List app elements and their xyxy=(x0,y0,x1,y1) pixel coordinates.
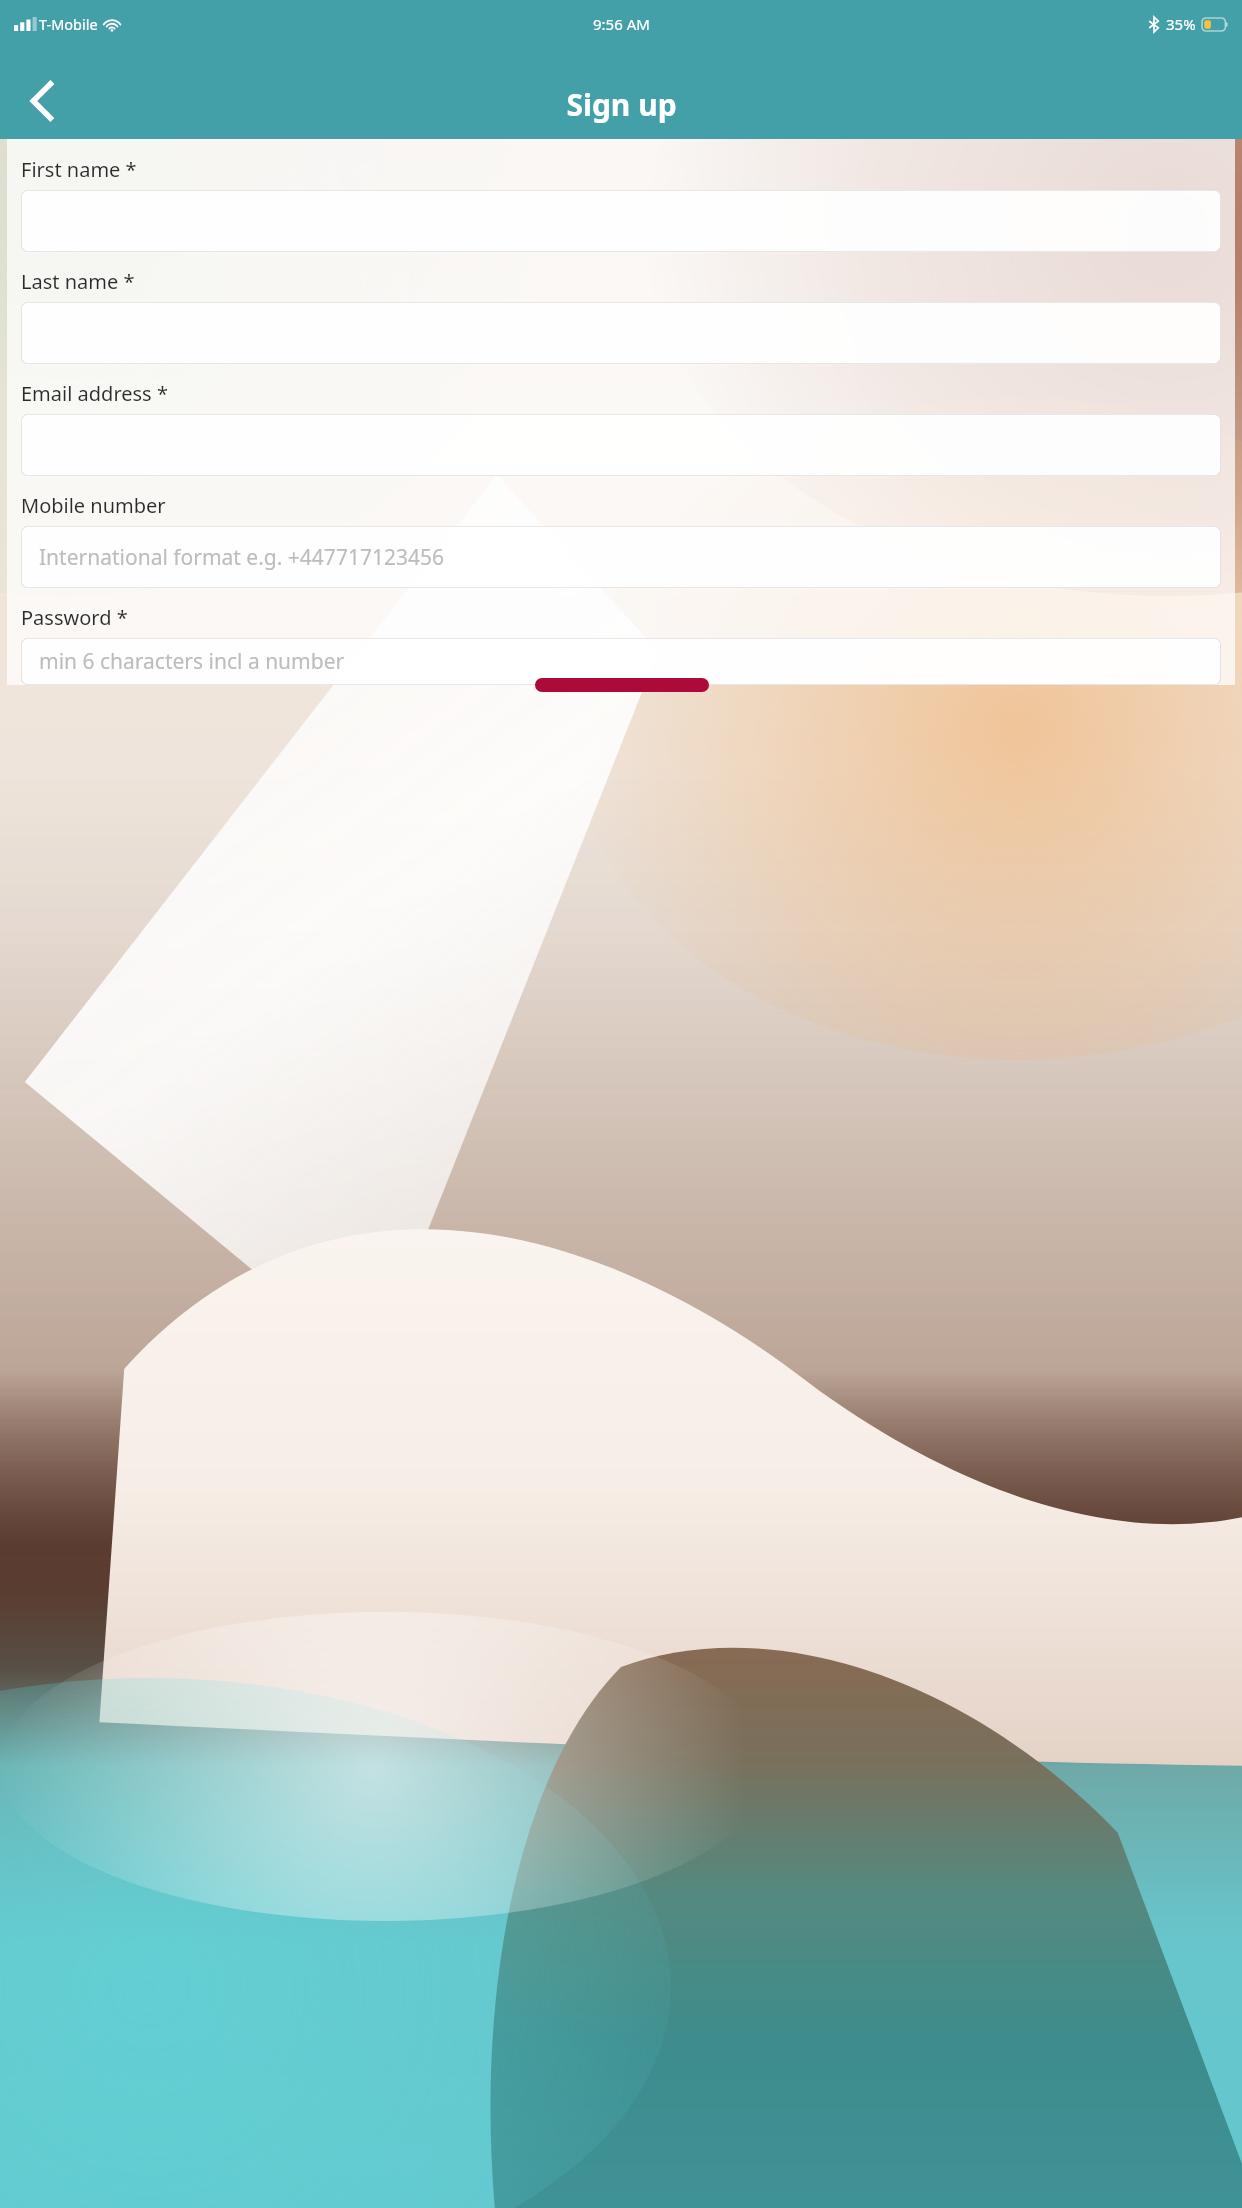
staticText: T-Mobile xyxy=(39,14,98,34)
staticText: Sign up xyxy=(566,84,677,125)
staticText: International format e.g. +447717123456 xyxy=(39,543,444,572)
staticText: Password * xyxy=(21,604,128,631)
staticText: Mobile number xyxy=(21,492,166,519)
button[interactable] xyxy=(21,414,1221,476)
staticText: Email address * xyxy=(21,380,168,407)
button[interactable]: International format e.g. +447717123456 xyxy=(21,526,1221,588)
staticText: First name * xyxy=(21,156,137,183)
staticText: min 6 characters incl a number xyxy=(39,647,345,676)
staticText: 9:56 AM xyxy=(593,14,650,34)
staticText: Last name * xyxy=(21,268,135,295)
button[interactable]: Back xyxy=(10,69,74,133)
button[interactable] xyxy=(21,302,1221,364)
staticText: 35% xyxy=(1166,14,1196,34)
button[interactable]: min 6 characters incl a number xyxy=(21,638,1221,685)
button[interactable] xyxy=(21,190,1221,252)
